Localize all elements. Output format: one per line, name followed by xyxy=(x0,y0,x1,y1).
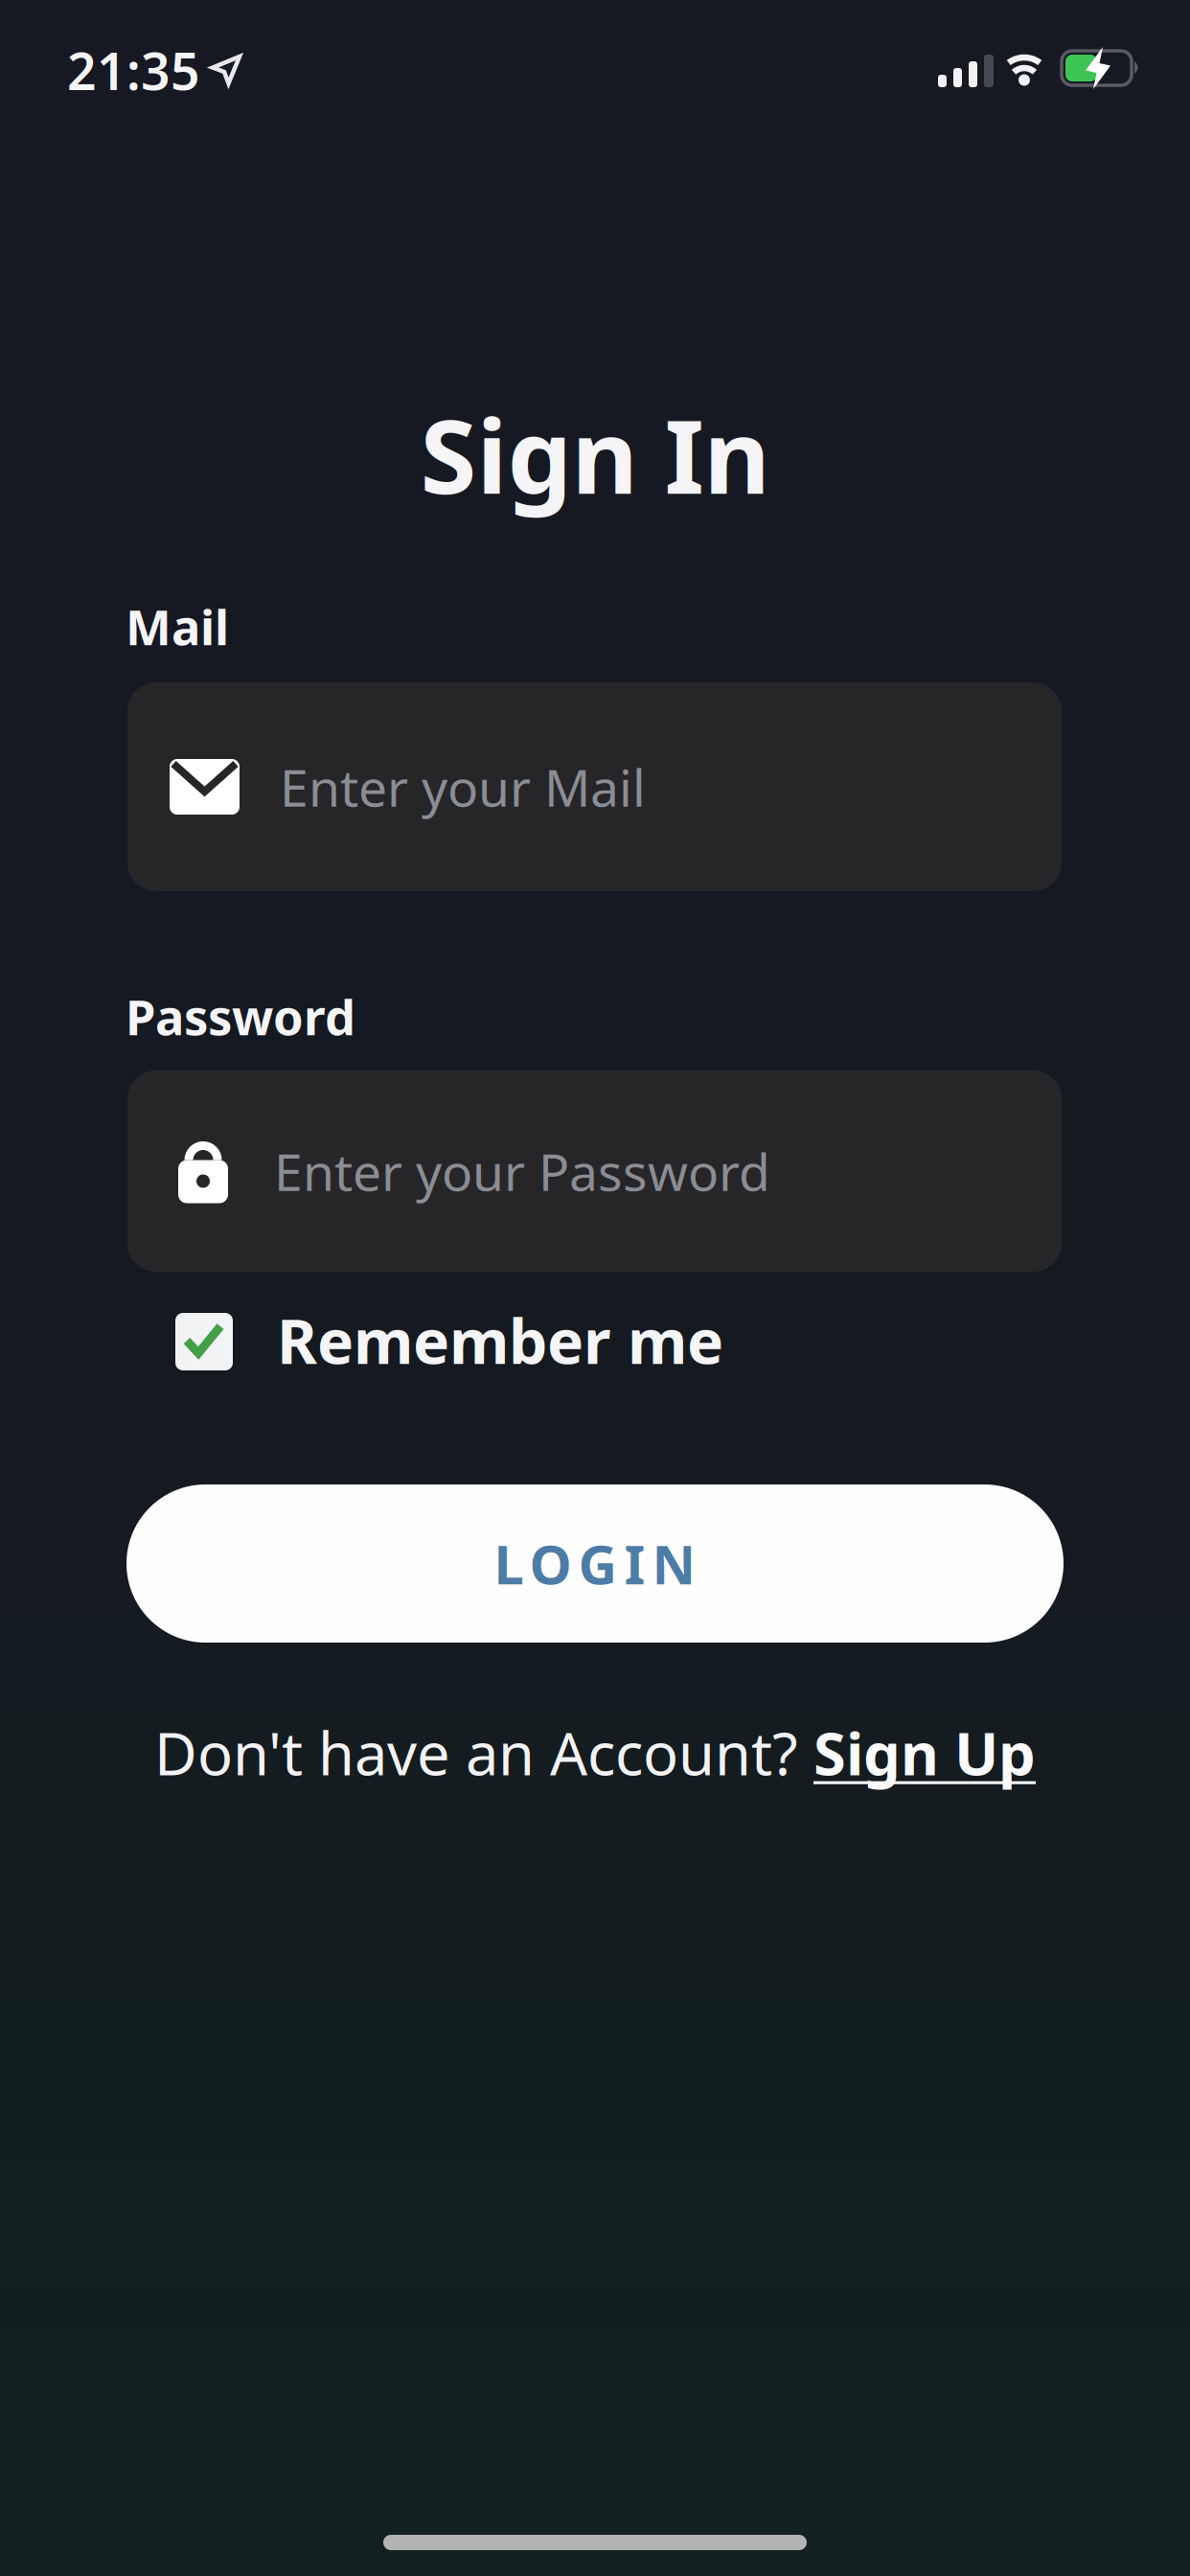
staticText: Remember me xyxy=(277,1299,723,1381)
staticText: Enter your Password xyxy=(274,1137,770,1205)
staticText: Sign Up xyxy=(813,1713,1036,1792)
staticText: Enter your Mail xyxy=(280,753,646,821)
staticText: Password xyxy=(126,984,355,1049)
staticText: LOGIN xyxy=(494,1528,696,1599)
staticText: Mail xyxy=(126,594,229,659)
staticText: Sign In xyxy=(420,386,770,522)
staticText: 21:35 xyxy=(67,36,200,104)
staticText: Don't have an Account? xyxy=(154,1713,813,1792)
